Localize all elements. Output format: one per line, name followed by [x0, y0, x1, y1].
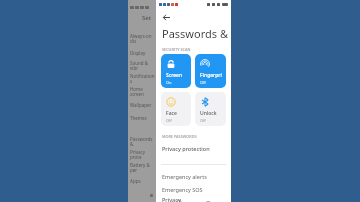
staticText: Wallpaper	[130, 102, 152, 108]
button[interactable]: Face unlock	[161, 92, 191, 126]
staticText: On	[166, 80, 172, 85]
staticText: Screen lock	[166, 72, 188, 79]
staticText: Set	[142, 14, 152, 22]
button[interactable]: Notifications	[128, 72, 156, 85]
staticText: Home screen	[130, 86, 156, 98]
staticText: Themes	[130, 115, 147, 121]
staticText: Notifications	[130, 73, 156, 85]
staticText: SECURITY SCAN	[162, 47, 191, 52]
staticText: Unlock with	[200, 110, 223, 117]
staticText: Apps	[130, 178, 141, 184]
staticText: Face unlock	[166, 110, 188, 117]
button[interactable]: Fingerprint	[195, 54, 226, 88]
staticText: Display	[130, 50, 146, 56]
staticText: Passwords & security	[162, 26, 231, 41]
button[interactable]: Unlock with Bluetooth	[195, 92, 226, 126]
staticText: Off	[200, 118, 206, 123]
staticText: Battery & per	[130, 162, 156, 174]
button[interactable]: Sound & vibr	[128, 59, 156, 72]
button[interactable]: Always-on dis screen	[128, 31, 156, 46]
button[interactable]: Apps	[128, 174, 156, 187]
button[interactable]: Privacy	[156, 196, 231, 202]
button[interactable]: Privacy prote	[128, 148, 156, 161]
staticText: Emergency SOS	[162, 186, 203, 193]
button[interactable]: Emergency SOS	[156, 183, 231, 196]
staticText: Privacy prote	[130, 149, 156, 161]
staticText: Off	[200, 80, 206, 85]
staticText: Passwords &	[130, 136, 156, 148]
staticText: Emergency alerts	[162, 173, 207, 180]
staticText: Fingerprint	[200, 72, 223, 79]
button[interactable]: Themes	[128, 111, 156, 124]
staticText: Sound & vibr	[130, 60, 156, 72]
button[interactable]: Privacy protection password	[156, 142, 231, 155]
button[interactable]: Passwords &	[128, 135, 156, 148]
button[interactable]: Emergency alerts	[156, 170, 231, 183]
button[interactable]: Battery & per	[128, 161, 156, 174]
staticText: Privacy protection password	[162, 145, 227, 152]
staticText: Off	[166, 118, 172, 123]
staticText: MORE PASSWORDS	[162, 134, 197, 139]
staticText: Privacy	[162, 196, 181, 202]
button[interactable]: Back	[160, 11, 172, 23]
button[interactable]: Screen lock	[161, 54, 191, 88]
button[interactable]: Wallpaper	[128, 98, 156, 111]
staticText: Always-on dis screen	[130, 33, 156, 45]
button[interactable]: Home screen	[128, 85, 156, 98]
button[interactable]: Display	[128, 46, 156, 59]
